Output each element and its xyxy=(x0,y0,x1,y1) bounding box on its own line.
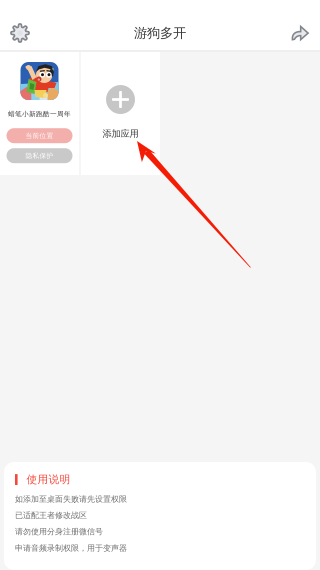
button[interactable]: Share xyxy=(280,16,320,50)
button[interactable]: 蜡笔小新跑酷一周年 xyxy=(0,52,79,175)
button[interactable]: Settings xyxy=(0,16,40,50)
staticText: 游狗多开 xyxy=(134,25,186,41)
staticText: 隐私保护 xyxy=(25,152,53,160)
button[interactable]: 添加应用 xyxy=(80,52,160,175)
staticText: 已适配王者修改战区 xyxy=(15,510,87,520)
staticText: 添加应用 xyxy=(102,128,138,139)
staticText: 请勿使用分身注册微信号 xyxy=(15,527,103,537)
staticText: 使用说明 xyxy=(27,473,71,486)
staticText: 如添加至桌面失败请先设置权限 xyxy=(15,494,127,504)
staticText: 申请音频录制权限，用于变声器 xyxy=(15,543,127,553)
staticText: 蜡笔小新跑酷一周年 xyxy=(8,110,71,118)
staticText: 当前位置 xyxy=(25,132,53,140)
